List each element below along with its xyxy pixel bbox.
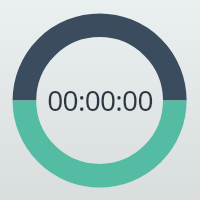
button[interactable]: Start or pause stopwatch bbox=[0, 0, 200, 200]
staticText: 00:00:00 bbox=[47, 81, 153, 119]
